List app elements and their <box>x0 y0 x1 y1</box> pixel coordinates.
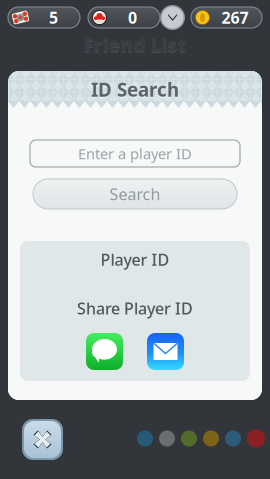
button[interactable]: 0 <box>88 7 160 28</box>
staticText: Friend List <box>83 33 186 58</box>
button[interactable]: Share via Mail <box>147 333 184 370</box>
button[interactable]: 5 <box>8 7 80 28</box>
staticText: 0 <box>128 7 137 28</box>
staticText: ID Search <box>91 78 179 103</box>
button[interactable]: 267 <box>191 7 262 28</box>
button[interactable]: Search <box>8 179 262 209</box>
staticText: ID Search <box>91 77 179 102</box>
button[interactable]: Close <box>22 419 63 460</box>
staticText: Share Player ID <box>77 298 193 319</box>
staticText: Search <box>109 183 160 205</box>
staticText: 5 <box>49 7 58 28</box>
staticText: Friend List <box>83 32 186 57</box>
staticText: Player ID <box>100 249 169 270</box>
staticText: Enter a player ID <box>78 144 192 163</box>
button[interactable]: Share via Messages <box>86 333 123 370</box>
button[interactable]: Menu <box>160 5 185 30</box>
staticText: 267 <box>221 7 248 28</box>
